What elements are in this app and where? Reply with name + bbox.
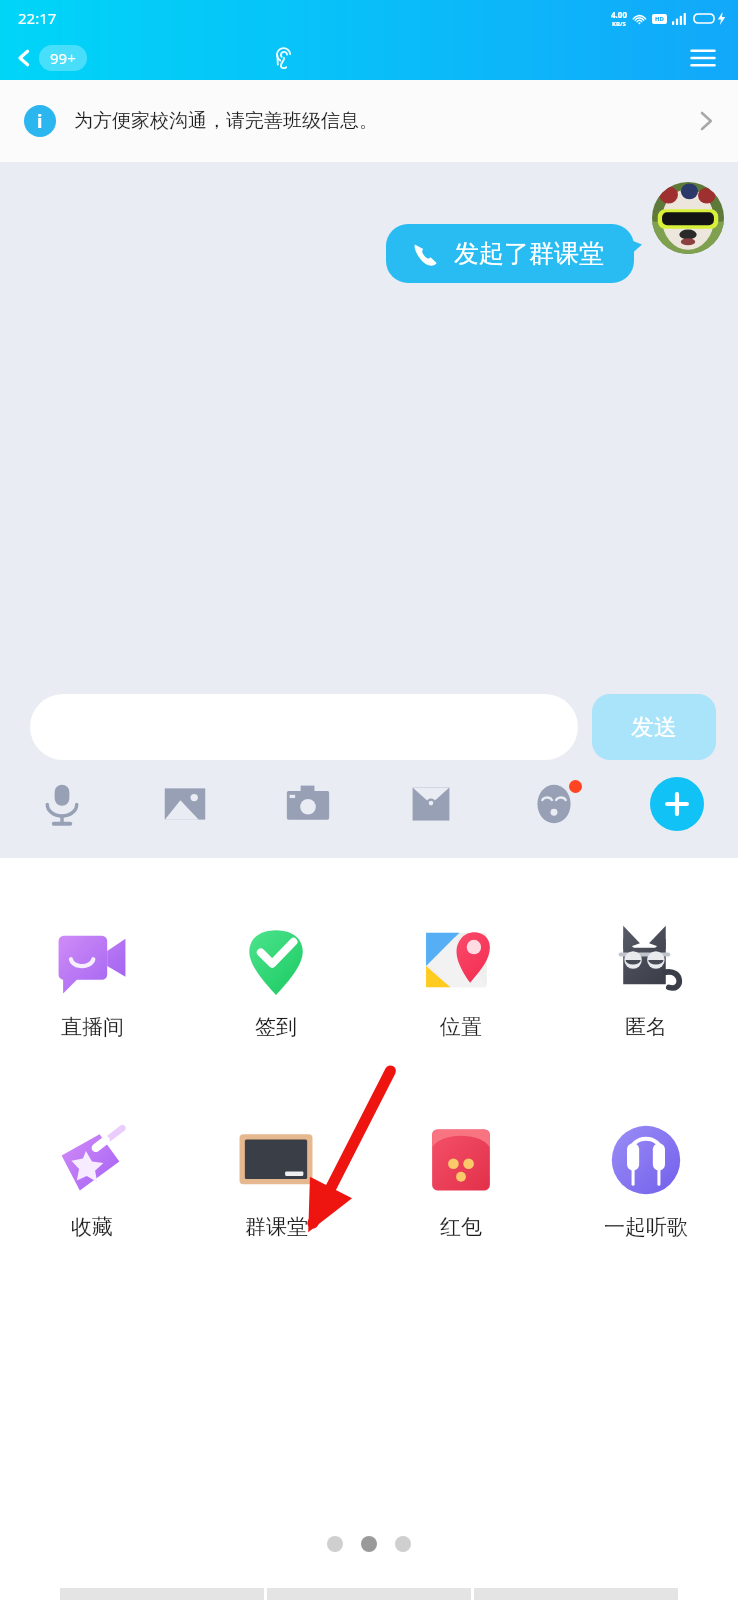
staticText: 群课堂 [245,1214,308,1240]
button[interactable]: Camera [246,772,369,836]
button[interactable]: 发送 [592,694,716,760]
button[interactable]: 一起听歌 [553,1118,738,1244]
button[interactable]: 直播间 [0,918,184,1044]
button[interactable]: 匿名 [553,918,738,1044]
button[interactable]: Menu [690,45,716,71]
staticText: 红包 [440,1214,482,1240]
button[interactable]: More [615,772,738,836]
button[interactable]: Voice [0,772,123,836]
button[interactable]: Avatar [652,182,724,254]
staticText: 收藏 [71,1214,113,1240]
button[interactable]: 发起了群课堂 [386,224,634,283]
staticText: 位置 [440,1014,482,1040]
button[interactable]: 签到 [184,918,368,1044]
button[interactable] [30,694,578,760]
staticText: 发送 [631,713,677,742]
staticText: 4.00 [611,9,627,20]
button[interactable]: Sticker [492,772,615,836]
button[interactable]: 群课堂 [184,1118,368,1244]
button[interactable]: Listen [273,47,295,69]
button[interactable]: Gallery [123,772,246,836]
button[interactable]: 红包 [368,1118,553,1244]
button[interactable]: 收藏 [0,1118,184,1244]
staticText: 99+ [50,48,76,68]
button[interactable]: Red packet [369,772,492,836]
other: Back [14,48,34,68]
staticText: 为方便家校沟通，请完善班级信息。 [74,109,378,133]
staticText: 签到 [255,1014,297,1040]
staticText: 22:17 [18,8,57,28]
button[interactable]: i [0,80,738,162]
staticText: 一起听歌 [604,1214,688,1240]
staticText: HD [655,15,664,23]
staticText: KB/S [612,20,626,28]
staticText: i [37,109,43,134]
staticText: 匿名 [625,1014,667,1040]
staticText: 发起了群课堂 [454,238,604,269]
button[interactable]: Back [10,41,91,75]
staticText: 直播间 [61,1014,124,1040]
button[interactable]: 位置 [368,918,553,1044]
